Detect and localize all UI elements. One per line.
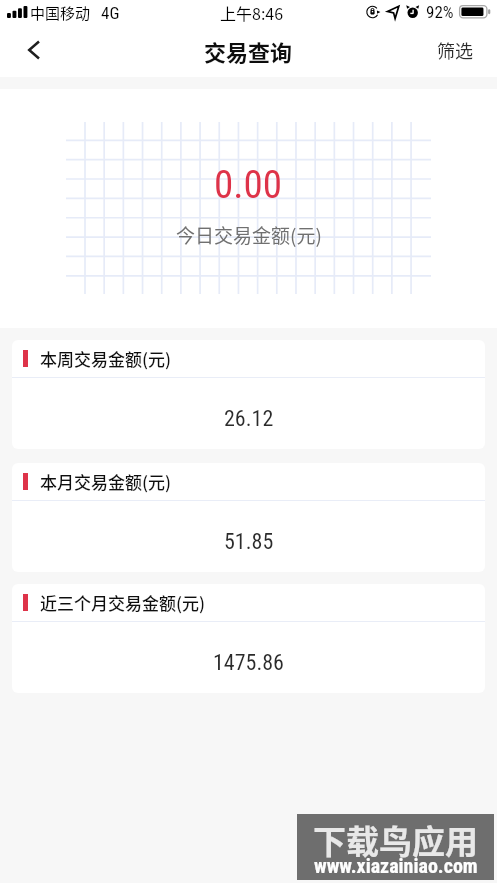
staticText: 近三个月交易金额(元) — [40, 590, 206, 615]
staticText: 本月交易金额(元) — [40, 469, 172, 494]
staticText: 51.85 — [224, 529, 274, 555]
staticText: 92% — [426, 2, 454, 22]
button[interactable]: Back — [0, 28, 62, 77]
staticText: 交易查询 — [204, 35, 293, 67]
button[interactable]: 筛选 — [437, 28, 473, 77]
staticText: 筛选 — [437, 37, 473, 63]
button[interactable]: 本周交易金额(元) — [12, 340, 485, 449]
staticText: 下载鸟应用 — [313, 816, 478, 864]
button[interactable]: 本月交易金额(元) — [12, 463, 485, 572]
staticText: 上午8:46 — [220, 1, 284, 24]
staticText: 4G — [101, 3, 120, 23]
staticText: www.xiazainiao.com — [314, 854, 478, 877]
staticText: 本周交易金额(元) — [40, 346, 172, 371]
staticText: 26.12 — [224, 406, 274, 432]
staticText: 中国移动 — [30, 2, 91, 24]
staticText: 1475.86 — [213, 650, 284, 676]
staticText: 0.00 — [214, 162, 283, 208]
button[interactable]: 近三个月交易金额(元) — [12, 584, 485, 693]
staticText: 今日交易金额(元) — [176, 221, 322, 249]
